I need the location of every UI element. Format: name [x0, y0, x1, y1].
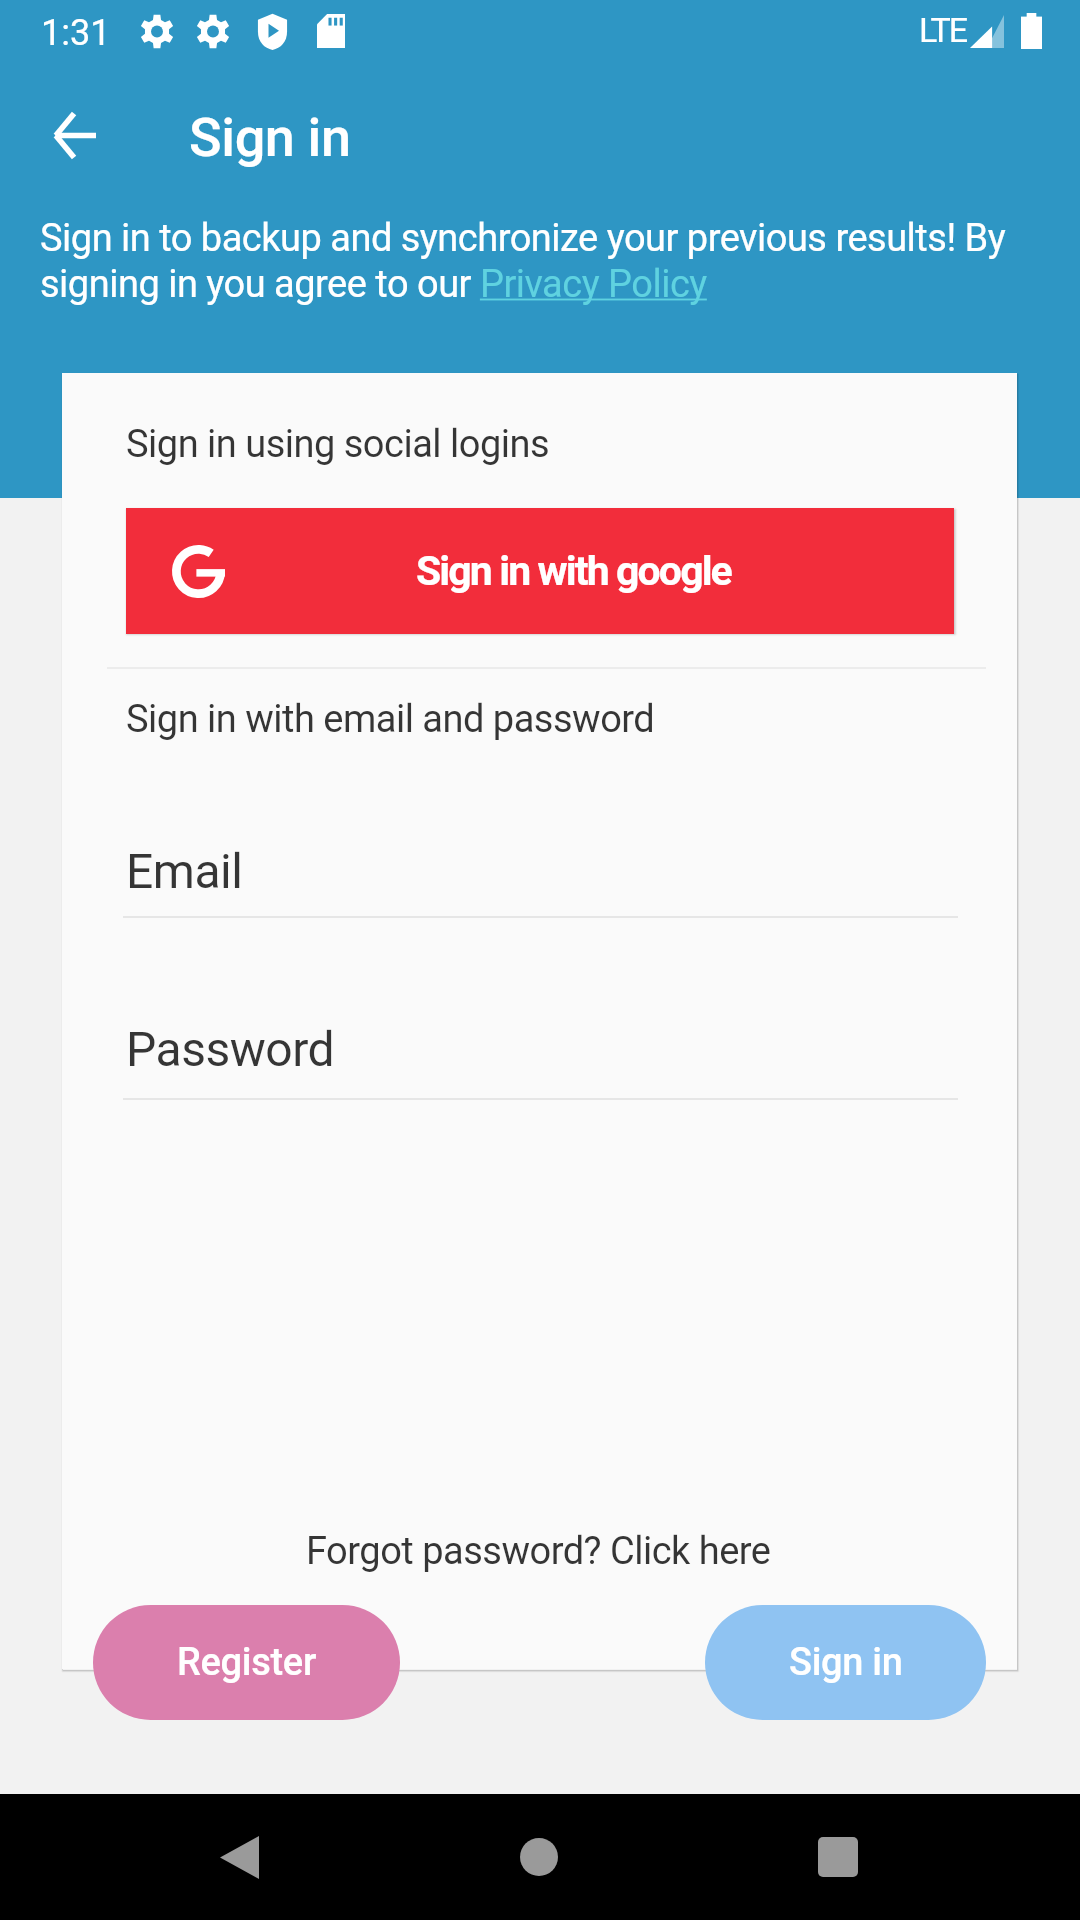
staticText: Sign in with google [416, 547, 731, 595]
staticText: Sign in with email and password [126, 697, 655, 742]
staticText: 1:31 [41, 12, 111, 54]
staticText: Sign in to backup and synchronize your p… [40, 216, 1030, 306]
button[interactable]: Home [484, 1802, 594, 1912]
button[interactable]: Sign in [705, 1605, 986, 1720]
button[interactable]: Back [26, 87, 122, 183]
button[interactable]: Recent apps [783, 1802, 893, 1912]
staticText: Register [177, 1640, 317, 1685]
staticText: Sign in [789, 1640, 903, 1685]
staticText: Forgot password? Click here [306, 1529, 771, 1574]
staticText: Sign in [189, 106, 351, 169]
staticText: Sign in using social logins [126, 422, 550, 467]
staticText: LTE [919, 10, 966, 50]
button[interactable]: Forgot password? Click here [306, 1529, 771, 1574]
staticText: Email [126, 843, 243, 899]
staticText: Password [126, 1021, 335, 1077]
button[interactable]: Register [93, 1605, 400, 1720]
button[interactable]: Sign in with google [126, 508, 954, 634]
button[interactable]: Back [184, 1802, 294, 1912]
